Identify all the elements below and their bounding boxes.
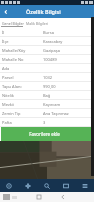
staticText: Genel Bilgiler	[2, 21, 24, 26]
button[interactable]: Recents	[34, 192, 44, 202]
button[interactable]: Mevkii	[0, 100, 94, 108]
button[interactable]: Ada	[0, 64, 94, 72]
staticText: Parsel	[2, 75, 43, 80]
staticText: İlçe	[2, 39, 43, 44]
staticText: Favorilere ekle	[29, 131, 60, 137]
button[interactable]: Favorilere ekle	[1, 127, 92, 141]
staticText: Bağ	[43, 93, 51, 98]
staticText: 1032	[43, 75, 53, 80]
button[interactable]: Mahalle No	[0, 55, 94, 63]
staticText: Ada	[2, 66, 43, 71]
button[interactable]: More	[75, 179, 94, 192]
staticText: Gazipaşa	[43, 48, 60, 53]
staticText: Ana Taşınmaz	[43, 111, 69, 116]
staticText: Zemin Tip	[2, 111, 43, 116]
staticText: Mevkii	[2, 102, 43, 107]
button[interactable]: İl	[0, 28, 94, 36]
button[interactable]: Tapu Alanı	[0, 82, 94, 90]
staticText: Pafta	[2, 120, 43, 125]
staticText: İl	[2, 30, 43, 35]
staticText: Kayırcam	[43, 102, 61, 107]
button[interactable]: Measure	[56, 179, 75, 192]
button[interactable]: Nitelik	[0, 91, 94, 99]
staticText: 100489	[43, 57, 57, 62]
staticText: Tapu Alanı	[2, 84, 43, 89]
button[interactable]: Mahalle/Köy	[0, 46, 94, 54]
staticText: Özellik Bilgisi	[26, 8, 61, 15]
staticText: Malik Bilgileri	[26, 21, 49, 26]
staticText: 3	[43, 120, 46, 125]
button[interactable]: My location	[18, 179, 37, 192]
staticText: 990,00	[43, 84, 56, 89]
button[interactable]: Genel Bilgiler	[2, 18, 24, 28]
staticText: Mahalle/Köy	[2, 48, 43, 53]
staticText: Nitelik	[2, 93, 43, 98]
button[interactable]: Parsel	[0, 73, 94, 81]
staticText: Bursa	[43, 30, 54, 35]
button[interactable]: Back	[1, 7, 11, 17]
button[interactable]: Layers	[0, 179, 18, 192]
button[interactable]: İlçe	[0, 37, 94, 45]
button[interactable]: Pafta	[0, 118, 94, 126]
staticText: Mahalle No	[2, 57, 43, 62]
button[interactable]: Zemin Tip	[0, 109, 94, 117]
button[interactable]: Malik Bilgileri	[26, 18, 49, 28]
staticText: Karacabey	[43, 39, 63, 44]
button[interactable]: Search	[37, 179, 56, 192]
button[interactable]: Back	[58, 192, 68, 202]
